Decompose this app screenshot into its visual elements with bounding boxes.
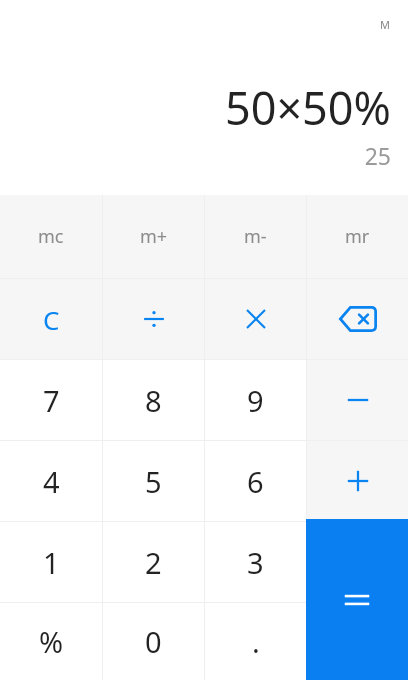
staticText: 3 [247, 543, 264, 582]
button[interactable]: 0 [103, 603, 204, 680]
button[interactable]: Divide [103, 279, 204, 359]
staticText: C [43, 302, 60, 337]
button[interactable]: 3 [205, 522, 306, 602]
staticText: mr [345, 224, 370, 249]
staticText: 6 [247, 462, 264, 501]
staticText: 9 [247, 381, 264, 420]
staticText: M [380, 17, 390, 32]
button[interactable]: Backspace [307, 279, 408, 359]
button[interactable]: % [0, 603, 102, 680]
button[interactable]: Plus [307, 441, 408, 521]
button[interactable]: C [0, 279, 102, 359]
staticText: 0 [145, 622, 162, 661]
button[interactable]: 6 [205, 441, 306, 521]
button[interactable]: 4 [0, 441, 102, 521]
staticText: 5 [145, 462, 162, 501]
button[interactable]: Multiply [205, 279, 306, 359]
button[interactable]: . [205, 603, 306, 680]
button[interactable]: 2 [103, 522, 204, 602]
staticText: 25 [364, 140, 391, 171]
staticText: 4 [43, 462, 60, 501]
staticText: 7 [43, 381, 60, 420]
button[interactable]: Equals [306, 519, 408, 680]
staticText: 2 [145, 543, 162, 582]
button[interactable]: 1 [0, 522, 102, 602]
staticText: 1 [43, 543, 60, 582]
button[interactable]: Minus [307, 360, 408, 440]
staticText: . [252, 622, 260, 661]
button[interactable]: 9 [205, 360, 306, 440]
staticText: 50×50% [224, 77, 391, 138]
button[interactable]: 8 [103, 360, 204, 440]
button[interactable]: 5 [103, 441, 204, 521]
button[interactable]: mc [0, 195, 102, 278]
button[interactable]: 7 [0, 360, 102, 440]
button[interactable]: m- [205, 195, 306, 278]
button[interactable]: mr [307, 195, 408, 278]
staticText: m+ [140, 224, 168, 249]
staticText: mc [38, 224, 64, 249]
staticText: % [39, 622, 64, 661]
staticText: m- [244, 224, 267, 249]
button[interactable]: m+ [103, 195, 204, 278]
staticText: 8 [145, 381, 162, 420]
